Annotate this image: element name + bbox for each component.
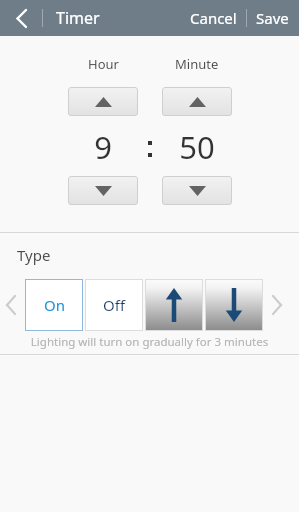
button[interactable]: Cancel bbox=[181, 0, 246, 36]
staticText: Hour bbox=[88, 55, 119, 73]
staticText: 50 bbox=[179, 126, 215, 168]
button[interactable]: Decrease hour bbox=[68, 176, 138, 205]
button[interactable]: Off bbox=[85, 279, 143, 331]
button[interactable]: Gradual on bbox=[145, 279, 203, 331]
staticText: Type bbox=[17, 245, 51, 265]
staticText: Cancel bbox=[190, 8, 237, 28]
button[interactable]: Increase hour bbox=[68, 87, 138, 116]
staticText: Minute bbox=[175, 55, 219, 73]
button[interactable]: Gradual off bbox=[205, 279, 263, 331]
staticText: Lighting will turn on gradually for 3 mi… bbox=[0, 334, 299, 350]
button[interactable]: More types bbox=[266, 279, 288, 331]
button[interactable]: Decrease minute bbox=[162, 176, 232, 205]
staticText: Save bbox=[256, 8, 289, 28]
button[interactable]: Save bbox=[247, 0, 299, 36]
staticText: 9 bbox=[94, 126, 112, 168]
staticText: Off bbox=[103, 295, 126, 315]
button[interactable]: Increase minute bbox=[162, 87, 232, 116]
staticText: On bbox=[44, 295, 65, 315]
staticText: Timer bbox=[56, 7, 100, 29]
button[interactable]: On bbox=[25, 279, 83, 331]
button[interactable]: Back bbox=[0, 0, 42, 36]
button[interactable]: Previous types bbox=[0, 279, 22, 331]
